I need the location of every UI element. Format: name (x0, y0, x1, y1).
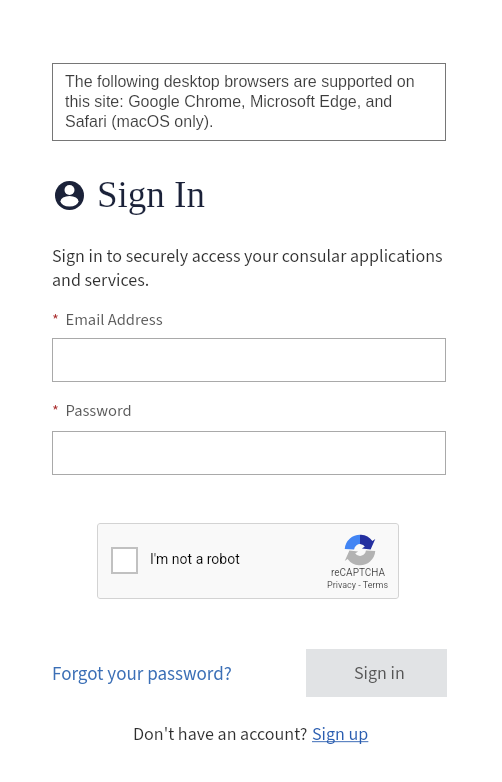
staticText: Sign up (312, 722, 369, 748)
button[interactable]: Text input (52, 431, 446, 475)
staticText: * Email Address (52, 308, 163, 331)
button[interactable]: Sign up (312, 722, 369, 748)
staticText: Don't have an account? (133, 722, 312, 748)
button[interactable]: Sign in (306, 649, 447, 697)
staticText: Sign in to securely access your consular… (52, 244, 447, 293)
staticText: Privacy - Terms (327, 580, 389, 591)
staticText: Sign in (354, 661, 405, 687)
button[interactable]: Text input (52, 338, 446, 382)
button[interactable]: I'm not a robot checkbox (111, 547, 138, 574)
staticText: Forgot your password? (52, 661, 232, 688)
button[interactable]: Forgot your password? (52, 661, 232, 688)
staticText: * Password (52, 399, 132, 422)
staticText: The following desktop browsers are suppo… (65, 73, 425, 130)
staticText: Sign In (97, 174, 205, 215)
staticText: reCAPTCHA (331, 567, 386, 579)
staticText: I'm not a robot (150, 551, 240, 567)
